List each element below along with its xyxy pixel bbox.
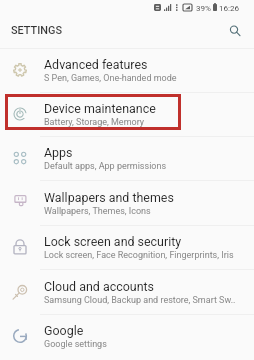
- staticText: Wallpapers and themes: [44, 190, 174, 205]
- staticText: Lock screen, Face Recognition, Fingerpri…: [44, 250, 234, 261]
- staticText: Advanced features: [44, 57, 148, 72]
- staticText: Device maintenance: [44, 101, 156, 116]
- staticText: Apps: [44, 145, 73, 160]
- staticText: Google settings: [44, 339, 107, 350]
- staticText: Google: [44, 323, 84, 338]
- staticText: Battery, Storage, Memory: [44, 117, 145, 128]
- staticText: Default apps, App permissions: [44, 161, 167, 172]
- button[interactable]: Device maintenance: [0, 93, 254, 137]
- staticText: Cloud and accounts: [44, 279, 154, 294]
- staticText: 16:26: [219, 3, 240, 12]
- staticText: 39%: [196, 3, 212, 12]
- staticText: Wallpapers, Themes, Icons: [44, 206, 151, 217]
- button[interactable]: Cloud and accounts: [0, 271, 254, 315]
- staticText: SETTINGS: [11, 24, 63, 37]
- staticText: Lock screen and security: [44, 234, 182, 249]
- staticText: Samsung Cloud, Backup and restore, Smart…: [44, 295, 236, 306]
- button[interactable]: Wallpapers and themes: [0, 182, 254, 226]
- button[interactable]: Lock screen and security: [0, 226, 254, 270]
- button[interactable]: Search: [224, 20, 246, 42]
- button[interactable]: Google: [0, 315, 254, 359]
- button[interactable]: Apps: [0, 137, 254, 181]
- button[interactable]: Advanced features: [0, 49, 254, 93]
- staticText: S Pen, Games, One-handed mode: [44, 73, 177, 84]
